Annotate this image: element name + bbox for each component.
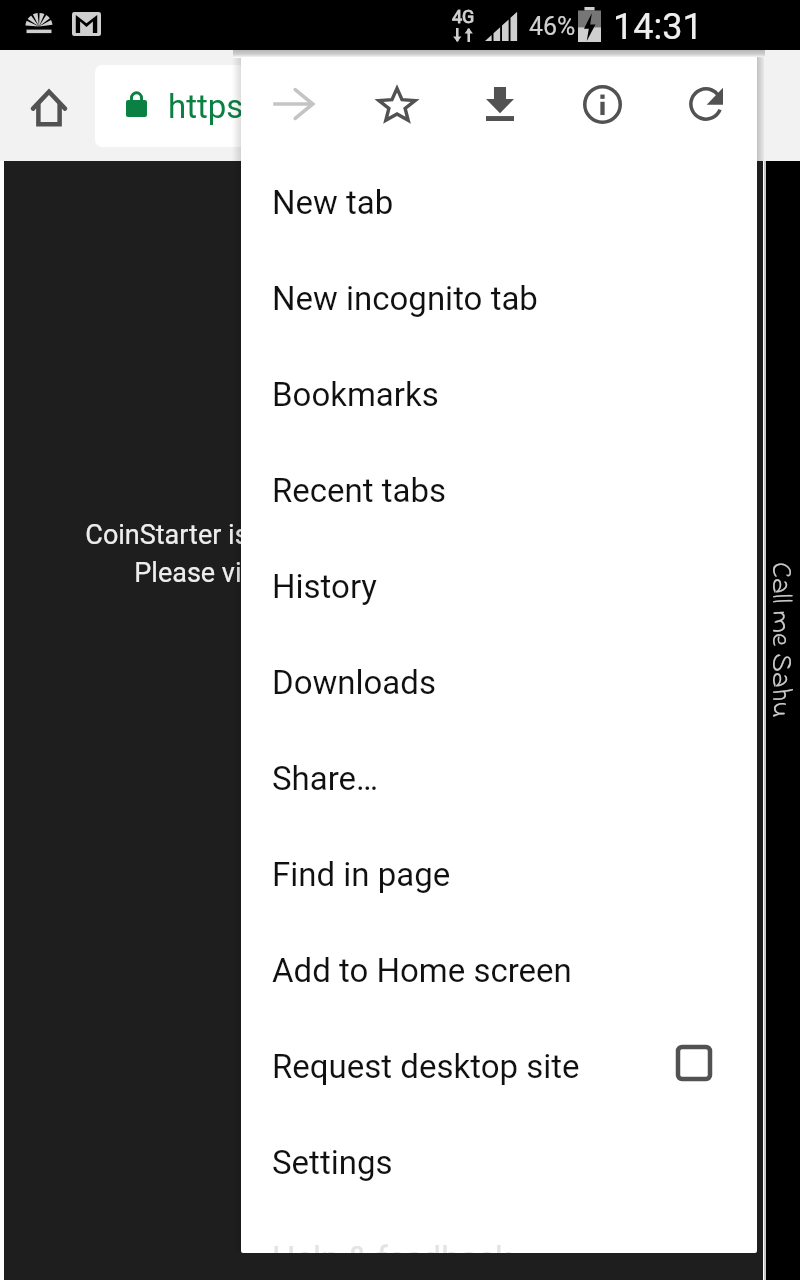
button[interactable]: Recent tabs [241,442,757,538]
staticText: Bookmarks [272,375,439,414]
staticText: Request desktop site [272,1047,580,1086]
staticText: 4G [452,6,475,27]
staticText: New incognito tab [272,279,538,318]
staticText: Settings [272,1143,393,1182]
staticText: Call me Sahu [759,562,800,718]
button[interactable]: Page info [551,57,654,151]
staticText: Find in page [272,855,451,894]
button[interactable]: Reload [654,57,757,151]
button[interactable]: Forward [241,57,345,151]
staticText: History [272,567,377,606]
button[interactable]: https://coinstarter.com [95,65,715,147]
button[interactable]: Find in page [241,826,757,922]
staticText: Help & feedback [272,1239,512,1253]
button[interactable]: Request desktop site [241,1018,757,1114]
staticText: 46% [529,12,576,41]
button[interactable]: Download [448,57,551,151]
staticText: New tab [272,183,394,222]
staticText: Please visit our blog to read the full s… [134,557,628,589]
button[interactable]: Settings [241,1114,757,1210]
button[interactable]: Bookmarks [241,346,757,442]
staticText: Share… [272,759,379,798]
button[interactable]: Downloads [241,634,757,730]
button[interactable]: Home [18,76,80,138]
staticText: Recent tabs [272,471,447,510]
button[interactable]: Share… [241,730,757,826]
staticText: CoinStarter is no longer accepting new m… [85,519,677,551]
button[interactable]: New tab [241,154,757,250]
button[interactable]: New incognito tab [241,250,757,346]
staticText: https://coinstarter.com [168,87,507,126]
staticText: Downloads [272,663,436,702]
button[interactable]: Bookmark [345,57,448,151]
button[interactable]: History [241,538,757,634]
button[interactable]: Help & feedback [241,1210,757,1253]
staticText: Add to Home screen [272,951,572,990]
staticText: 14:31 [613,6,703,48]
button[interactable]: Add to Home screen [241,922,757,1018]
